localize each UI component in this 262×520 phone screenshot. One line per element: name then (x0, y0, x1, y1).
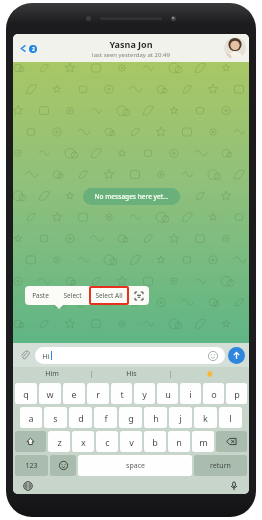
staticText: Paste (32, 291, 49, 300)
button[interactable]: Emoji (208, 351, 218, 361)
button[interactable]: o (203, 383, 224, 404)
button[interactable]: d (69, 407, 92, 428)
button[interactable]: u (157, 383, 178, 404)
button[interactable]: y (134, 383, 155, 404)
button[interactable]: Him (13, 367, 91, 381)
staticText: y (142, 388, 147, 400)
staticText: s (53, 412, 58, 424)
staticText: i (189, 388, 192, 400)
staticText: f (104, 412, 108, 424)
button[interactable]: Attach (17, 347, 33, 363)
staticText: h (153, 412, 159, 424)
button[interactable]: His (92, 367, 170, 381)
button[interactable]: Scan text (129, 286, 149, 305)
staticText: p (234, 388, 240, 400)
button[interactable]: e (63, 383, 85, 404)
staticText: b (152, 436, 158, 448)
button[interactable]: k (194, 407, 217, 428)
button[interactable]: 123 (15, 455, 48, 476)
button[interactable]: h (144, 407, 167, 428)
button[interactable]: space (78, 455, 192, 476)
button[interactable]: Hi (35, 347, 225, 364)
staticText: 123 (25, 461, 38, 471)
staticText: l (229, 412, 232, 424)
button[interactable]: j (169, 407, 192, 428)
button[interactable]: t (111, 383, 132, 404)
staticText: Select (63, 291, 82, 300)
button[interactable]: return (194, 455, 247, 476)
button[interactable]: x (72, 431, 94, 452)
button[interactable]: p (226, 383, 247, 404)
button[interactable]: n (168, 431, 190, 452)
staticText: e (71, 388, 77, 400)
button[interactable]: b (144, 431, 166, 452)
staticText: z (57, 436, 62, 448)
staticText: return (210, 461, 231, 471)
staticText: d (78, 412, 84, 424)
button[interactable]: Waving hand emoji (171, 367, 249, 381)
button[interactable]: s (44, 407, 67, 428)
button[interactable]: g (119, 407, 142, 428)
button[interactable]: Back (17, 41, 39, 56)
button[interactable]: Backspace (216, 431, 247, 452)
button[interactable]: Voice input (227, 479, 241, 493)
staticText: x (81, 436, 86, 448)
staticText: No messages here yet... (94, 192, 169, 201)
staticText: r (96, 388, 100, 400)
staticText: a (28, 412, 34, 424)
button[interactable]: i (180, 383, 201, 404)
staticText: space (126, 461, 145, 471)
staticText: last seen yesterday at 20:49 (92, 51, 170, 59)
staticText: o (211, 388, 217, 400)
button[interactable]: Select (56, 286, 89, 305)
button[interactable]: r (87, 383, 109, 404)
button[interactable]: c (96, 431, 118, 452)
staticText: Him (45, 369, 59, 379)
button[interactable]: Select All (89, 286, 129, 305)
staticText: 2 (32, 46, 35, 53)
staticText: j (179, 412, 182, 424)
staticText: u (165, 388, 171, 400)
button[interactable]: w (39, 383, 61, 404)
staticText: g (128, 412, 134, 424)
button[interactable]: Paste (25, 286, 56, 305)
staticText: n (176, 436, 182, 448)
button[interactable]: q (15, 383, 37, 404)
staticText: Hi (42, 351, 50, 361)
staticText: t (120, 388, 124, 400)
staticText: k (203, 412, 208, 424)
button[interactable]: Change keyboard language (21, 479, 35, 493)
button[interactable]: a (20, 407, 42, 428)
staticText: v (129, 436, 134, 448)
button[interactable]: l (219, 407, 242, 428)
staticText: Yasna Jon (109, 38, 153, 50)
staticText: q (23, 388, 29, 400)
staticText: Select All (95, 291, 123, 300)
button[interactable]: v (120, 431, 142, 452)
staticText: w (46, 388, 54, 400)
button[interactable]: z (48, 431, 70, 452)
button[interactable]: Shift (15, 431, 46, 452)
staticText: m (199, 436, 208, 448)
button[interactable]: Emoji keyboard (50, 455, 76, 476)
staticText: c (105, 436, 110, 448)
button[interactable]: Profile photo (224, 37, 246, 59)
button[interactable]: f (94, 407, 117, 428)
button[interactable]: m (192, 431, 214, 452)
button[interactable]: Send (228, 347, 245, 364)
staticText: His (126, 369, 137, 379)
